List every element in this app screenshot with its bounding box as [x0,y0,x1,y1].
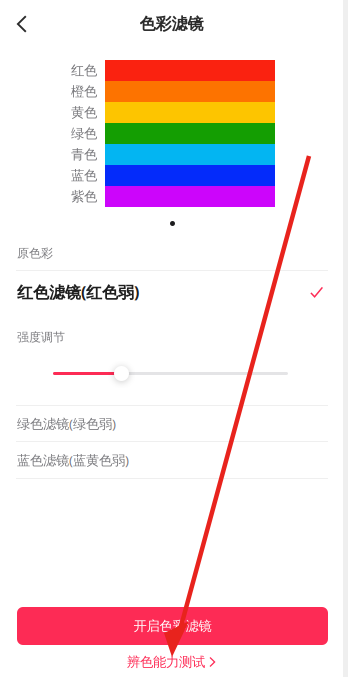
button[interactable]: 开启色彩滤镜 [17,607,328,645]
staticText: 红色滤镜(红色弱) [17,281,139,303]
staticText: 原色彩 [17,246,53,261]
staticText: 色彩滤镜 [139,14,203,34]
staticText: 青色 [71,146,97,163]
button[interactable]: 红色滤镜(红色弱) [0,277,343,307]
staticText: 橙色 [71,83,97,100]
button[interactable]: 绿色滤镜(绿色弱) [0,406,343,441]
staticText: 强度调节 [17,330,65,345]
button[interactable]: 辨色能力测试 [0,650,343,674]
button[interactable]: 返回 [0,2,44,46]
staticText: 黄色 [71,104,97,121]
staticText: 辨色能力测试 [127,654,205,670]
staticText: 红色 [71,62,97,79]
staticText: 蓝色 [71,167,97,184]
staticText: 开启色彩滤镜 [133,618,211,634]
staticText: 蓝色滤镜(蓝黄色弱) [17,451,129,469]
button[interactable]: 蓝色滤镜(蓝黄色弱) [0,442,343,478]
staticText: 绿色 [71,125,97,142]
staticText: 绿色滤镜(绿色弱) [17,415,116,432]
staticText: 紫色 [71,188,97,205]
